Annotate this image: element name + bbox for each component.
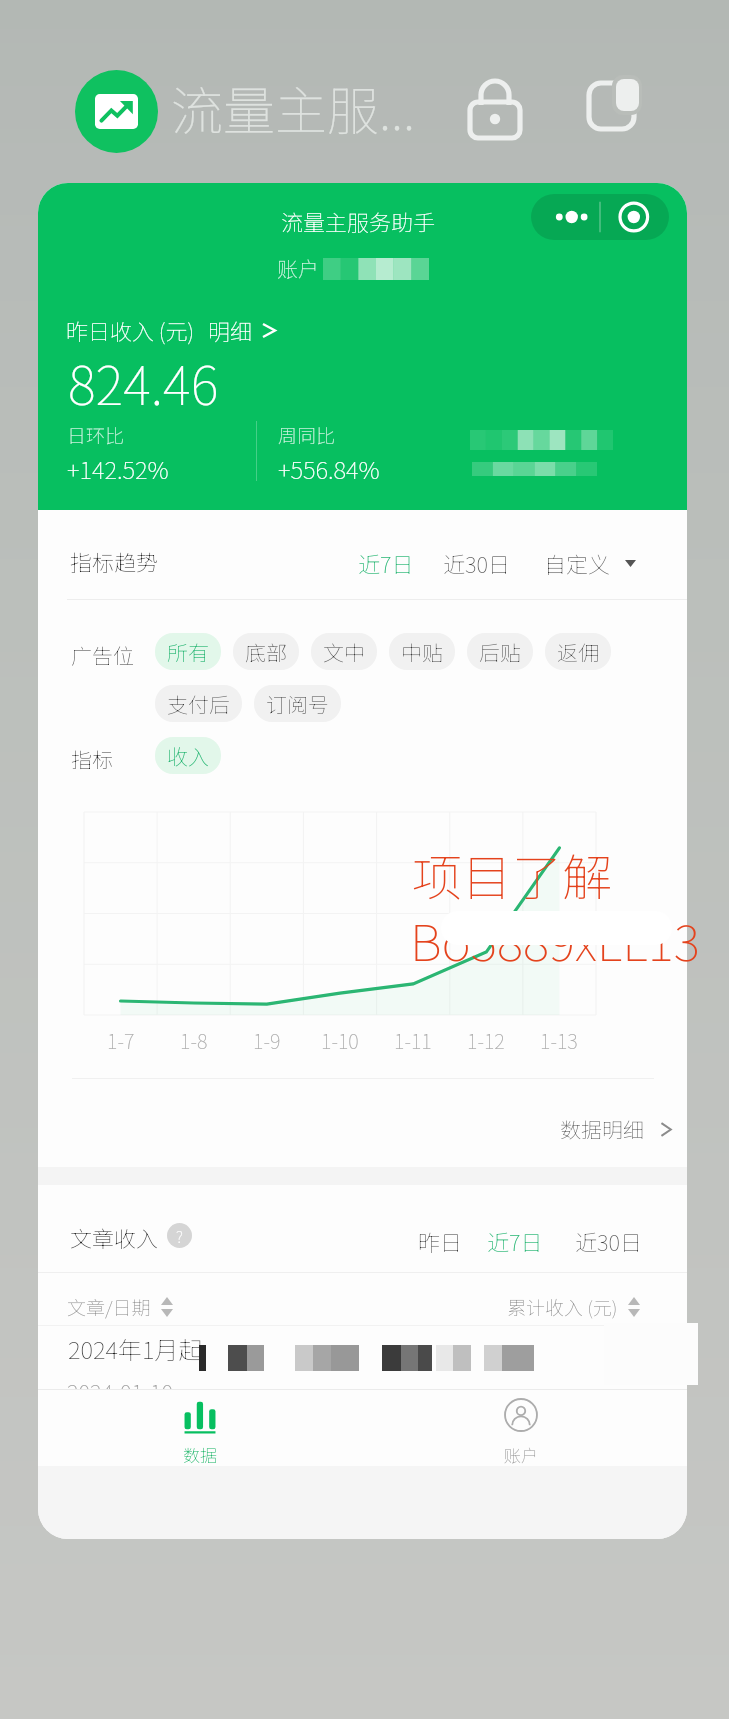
- staticText: 流量主服...: [171, 70, 416, 145]
- staticText: 数据: [183, 1442, 217, 1467]
- button[interactable]: 支付后: [155, 685, 242, 722]
- staticText: 1-9: [253, 1026, 281, 1055]
- staticText: 昨日收入 (元): [66, 314, 194, 346]
- staticText: 数据明细: [560, 1114, 644, 1144]
- staticText: Bo5889xLL13: [410, 903, 700, 975]
- staticText: 返佣: [557, 637, 599, 667]
- staticText: 指标趋势: [70, 545, 159, 577]
- staticText: 项目了解: [412, 838, 612, 910]
- button[interactable]: 订阅号: [254, 685, 341, 722]
- button[interactable]: 文章/日期: [67, 1293, 173, 1321]
- staticText: 中贴: [401, 637, 443, 667]
- button[interactable]: 更多: [531, 194, 669, 240]
- button[interactable]: 近7日: [352, 541, 420, 585]
- staticText: 收入: [167, 741, 209, 771]
- staticText: +556.84%: [278, 451, 380, 486]
- button[interactable]: 明细: [208, 314, 275, 346]
- staticText: 824.46: [68, 344, 219, 421]
- staticText: 流量主服务助手: [281, 205, 436, 237]
- staticText: 昨日: [418, 1225, 463, 1257]
- staticText: 近7日: [358, 547, 414, 579]
- staticText: 近7日: [487, 1225, 543, 1257]
- staticText: 1-13: [540, 1026, 578, 1055]
- staticText: 文章收入: [70, 1221, 159, 1253]
- staticText: 2024-01-10: [67, 1375, 173, 1407]
- staticText: 1-7: [107, 1026, 135, 1055]
- staticText: 文中: [323, 637, 365, 667]
- button[interactable]: 累计收入 (元): [507, 1293, 640, 1321]
- staticText: 明细: [208, 314, 253, 346]
- staticText: 账户: [277, 253, 319, 283]
- staticText: 后贴: [479, 637, 521, 667]
- button[interactable]: 后贴: [467, 633, 533, 670]
- staticText: 订阅号: [266, 689, 329, 719]
- staticText: +142.52%: [67, 451, 169, 486]
- button[interactable]: 近30日: [569, 1219, 648, 1263]
- staticText: 1-8: [180, 1026, 208, 1055]
- button[interactable]: 文中: [311, 633, 377, 670]
- button[interactable]: 帮助: [167, 1223, 192, 1248]
- button[interactable]: 中贴: [389, 633, 455, 670]
- button[interactable]: 返佣: [545, 633, 611, 670]
- button[interactable]: 锁定: [452, 60, 538, 146]
- button[interactable]: 自定义: [538, 541, 642, 585]
- staticText: 周同比: [278, 421, 336, 449]
- staticText: 1-12: [467, 1026, 505, 1055]
- staticText: 累计收入 (元): [507, 1293, 618, 1321]
- button[interactable]: 账户: [456, 1398, 586, 1467]
- button[interactable]: 数据: [135, 1398, 265, 1467]
- button[interactable]: 数据明细: [554, 1108, 678, 1150]
- staticText: 所有: [167, 637, 209, 667]
- button[interactable]: 近30日: [437, 541, 516, 585]
- staticText: 文章/日期: [67, 1293, 151, 1321]
- staticText: ?: [176, 1224, 183, 1247]
- button[interactable]: 所有: [155, 633, 221, 670]
- button[interactable]: 收入: [155, 737, 221, 774]
- staticText: 近30日: [443, 547, 510, 579]
- button[interactable]: 底部: [233, 633, 299, 670]
- button[interactable]: 分屏: [570, 60, 656, 146]
- button[interactable]: 近7日: [481, 1219, 549, 1263]
- button[interactable]: 流量主服务助手: [75, 70, 158, 153]
- staticText: 1-11: [394, 1026, 432, 1055]
- staticText: 账户: [504, 1442, 538, 1467]
- staticText: 支付后: [167, 689, 230, 719]
- staticText: 2024年1月起: [68, 1331, 203, 1366]
- staticText: 近30日: [575, 1225, 642, 1257]
- staticText: 指标: [71, 744, 113, 774]
- staticText: 广告位: [71, 640, 134, 670]
- staticText: 1-10: [321, 1026, 359, 1055]
- staticText: 自定义: [544, 547, 611, 579]
- staticText: 日环比: [67, 421, 125, 449]
- staticText: 底部: [245, 637, 287, 667]
- button[interactable]: 昨日: [412, 1219, 469, 1263]
